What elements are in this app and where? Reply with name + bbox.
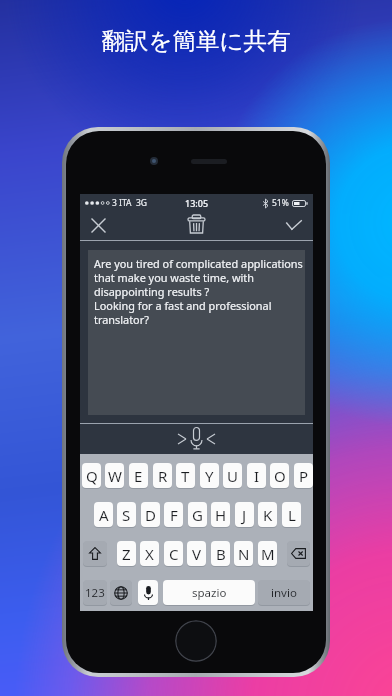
staticText: Are you tired of complicated application… xyxy=(94,256,303,327)
staticText: R xyxy=(158,466,168,486)
button[interactable]: F xyxy=(164,502,183,528)
staticText: V xyxy=(192,544,202,564)
button[interactable]: V xyxy=(187,541,206,567)
button[interactable]: D xyxy=(141,502,160,528)
staticText: O xyxy=(274,466,286,486)
button[interactable] xyxy=(110,580,132,606)
staticText: Y xyxy=(205,466,214,486)
button[interactable]: U xyxy=(223,463,242,489)
button[interactable]: N xyxy=(234,541,253,567)
staticText: A xyxy=(99,505,109,525)
button[interactable]: L xyxy=(282,502,301,528)
staticText: E xyxy=(134,466,143,486)
staticText: D xyxy=(145,505,156,525)
button[interactable]: invio xyxy=(258,580,310,606)
button[interactable]: I xyxy=(247,463,266,489)
button[interactable]: K xyxy=(258,502,277,528)
staticText: G xyxy=(192,505,203,525)
staticText: J xyxy=(242,505,247,525)
button[interactable]: S xyxy=(117,502,136,528)
button[interactable]: Delete xyxy=(178,209,214,239)
button[interactable]: B xyxy=(211,541,230,567)
staticText: L xyxy=(288,505,296,525)
button[interactable]: M xyxy=(258,541,277,567)
button[interactable]: W xyxy=(105,463,124,489)
button[interactable]: Y xyxy=(200,463,219,489)
staticText: S xyxy=(122,505,131,525)
staticText: U xyxy=(227,466,238,486)
button[interactable]: X xyxy=(140,541,159,567)
staticText: F xyxy=(170,505,178,525)
staticText: X xyxy=(145,544,154,564)
button[interactable]: Cancel xyxy=(80,210,116,240)
staticText: 翻訳を簡単に共有 xyxy=(0,26,392,56)
staticText: Z xyxy=(122,544,131,564)
button[interactable]: G xyxy=(188,502,207,528)
button[interactable]: R xyxy=(153,463,172,489)
button[interactable] xyxy=(287,541,310,567)
staticText: 51% xyxy=(272,197,289,209)
staticText: 123 xyxy=(85,585,105,601)
staticText: 3 ITA xyxy=(112,197,132,209)
staticText: Q xyxy=(86,466,98,486)
button[interactable]: H xyxy=(211,502,230,528)
staticText: M xyxy=(261,544,275,564)
staticText: N xyxy=(238,544,250,564)
button[interactable]: O xyxy=(270,463,289,489)
staticText: spazio xyxy=(192,585,227,601)
staticText: T xyxy=(181,466,190,486)
button[interactable]: A xyxy=(94,502,113,528)
button[interactable] xyxy=(138,580,158,606)
button[interactable]: E xyxy=(129,463,148,489)
staticText: H xyxy=(215,505,227,525)
staticText: W xyxy=(108,466,122,486)
button[interactable]: P xyxy=(294,463,313,489)
button[interactable] xyxy=(83,541,107,567)
button[interactable]: Dictate xyxy=(178,427,215,450)
staticText: K xyxy=(263,505,273,525)
button[interactable]: 123 xyxy=(83,580,107,606)
staticText: I xyxy=(254,466,260,486)
staticText: P xyxy=(299,466,309,486)
button[interactable]: Q xyxy=(82,463,101,489)
button[interactable]: Confirm xyxy=(274,210,313,240)
button[interactable]: Z xyxy=(117,541,136,567)
staticText: B xyxy=(216,544,226,564)
button[interactable]: spazio xyxy=(163,580,255,606)
button[interactable]: C xyxy=(164,541,183,567)
staticText: 3G xyxy=(136,197,148,209)
staticText: invio xyxy=(271,585,297,601)
staticText: C xyxy=(169,544,179,564)
staticText: 13:05 xyxy=(185,197,209,209)
button[interactable]: T xyxy=(176,463,195,489)
button[interactable]: J xyxy=(235,502,254,528)
